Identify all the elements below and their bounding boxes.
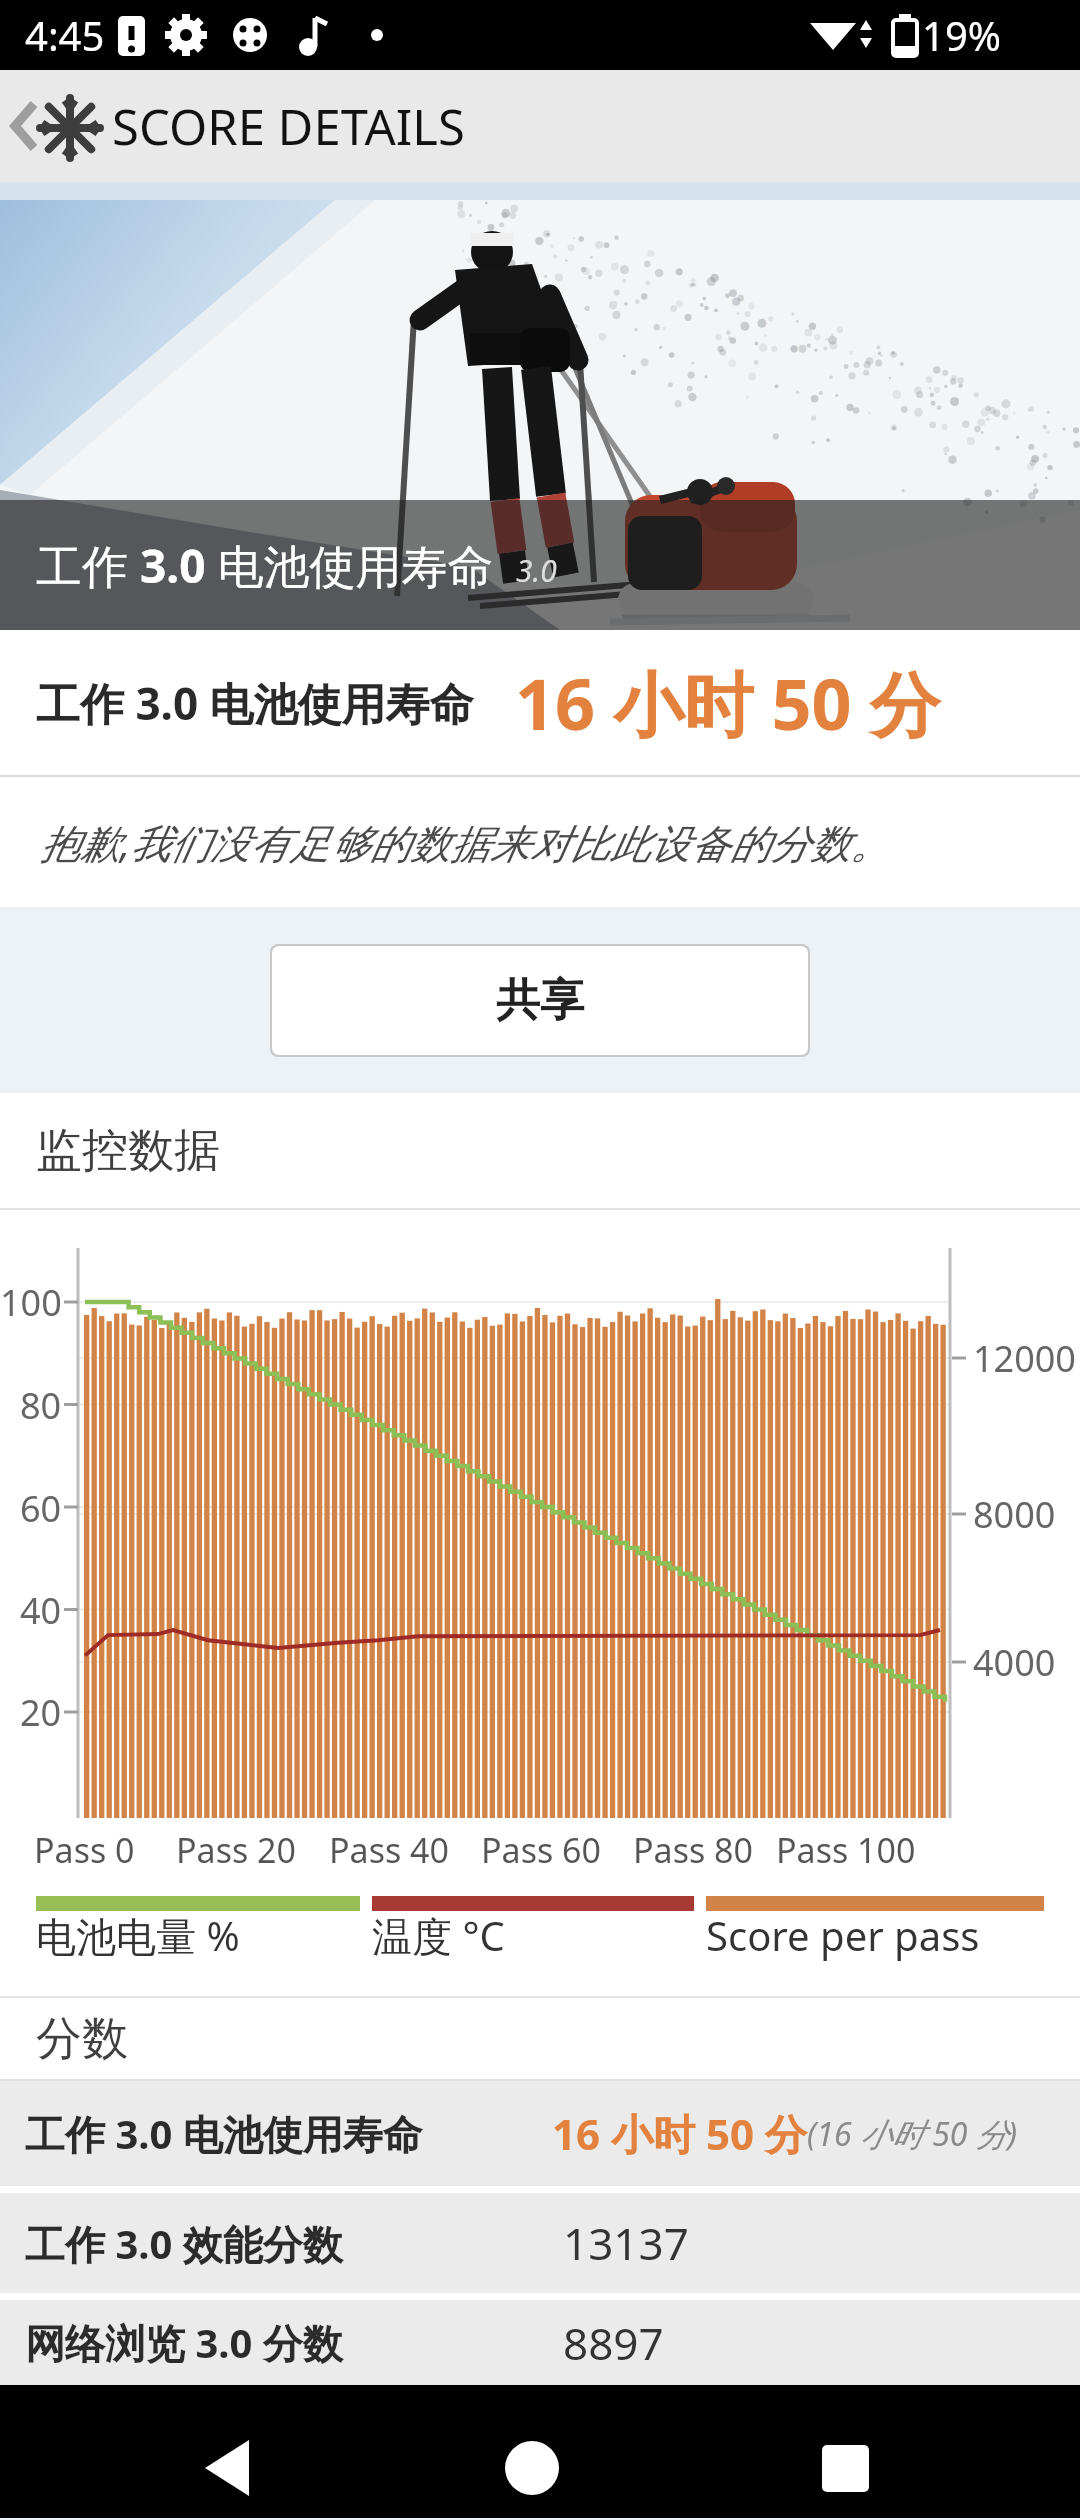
staticText: 共享 <box>496 973 584 1028</box>
staticText: Pass 40 <box>329 1827 449 1873</box>
staticText: 20 <box>20 1688 62 1737</box>
staticText: 3.0 <box>516 550 557 591</box>
staticText: Pass 0 <box>34 1827 135 1873</box>
staticText: (16 小时 50 分) <box>807 2112 1018 2156</box>
staticText: 8897 <box>563 2313 664 2373</box>
button[interactable]: 工作 3.0 电池使用寿命 <box>0 2081 1080 2186</box>
staticText: 80 <box>20 1381 62 1430</box>
staticText: 工作 3.0 电池使用寿命 <box>25 2106 423 2161</box>
staticText: 19% <box>922 8 1001 62</box>
staticText: Pass 100 <box>776 1827 916 1873</box>
staticText: 16 小时 50 分 <box>552 2105 807 2162</box>
staticText: 工作 3.0 电池使用寿命 <box>36 673 474 733</box>
staticText: 电池电量 % <box>36 1908 240 1963</box>
staticText: 工作 3.0 电池使用寿命 <box>36 534 494 597</box>
staticText: 13137 <box>563 2213 689 2273</box>
staticText: 8000 <box>973 1490 1056 1539</box>
staticText: Pass 60 <box>481 1827 601 1873</box>
staticText: 分数 <box>36 2010 128 2068</box>
button[interactable]: 工作 3.0 效能分数 <box>0 2193 1080 2293</box>
staticText: 12000 <box>973 1334 1076 1383</box>
staticText: Pass 20 <box>176 1827 296 1873</box>
staticText: 温度 °C <box>372 1908 505 1963</box>
staticText: 4:45 <box>25 8 105 62</box>
staticText: 40 <box>20 1586 62 1635</box>
staticText: SCORE DETAILS <box>112 93 465 160</box>
button[interactable] <box>800 2423 890 2513</box>
staticText: Pass 80 <box>633 1827 753 1873</box>
staticText: 4000 <box>973 1638 1056 1687</box>
staticText: 16 小时 50 分 <box>515 655 940 751</box>
staticText: 60 <box>20 1484 62 1533</box>
staticText: 100 <box>0 1278 62 1327</box>
staticText: 网络浏览 3.0 分数 <box>25 2315 343 2370</box>
button[interactable]: 共享 <box>272 946 808 1055</box>
button[interactable]: SCORE DETAILS <box>0 70 1080 182</box>
button[interactable] <box>487 2423 577 2513</box>
staticText: 监控数据 <box>36 1122 220 1180</box>
staticText: 抱歉,我们没有足够的数据来对比此设备的分数。 <box>40 815 891 870</box>
button[interactable] <box>182 2423 272 2513</box>
staticText: Score per pass <box>706 1908 980 1962</box>
button[interactable]: 网络浏览 3.0 分数 <box>0 2300 1080 2385</box>
staticText: 工作 3.0 效能分数 <box>25 2216 343 2271</box>
